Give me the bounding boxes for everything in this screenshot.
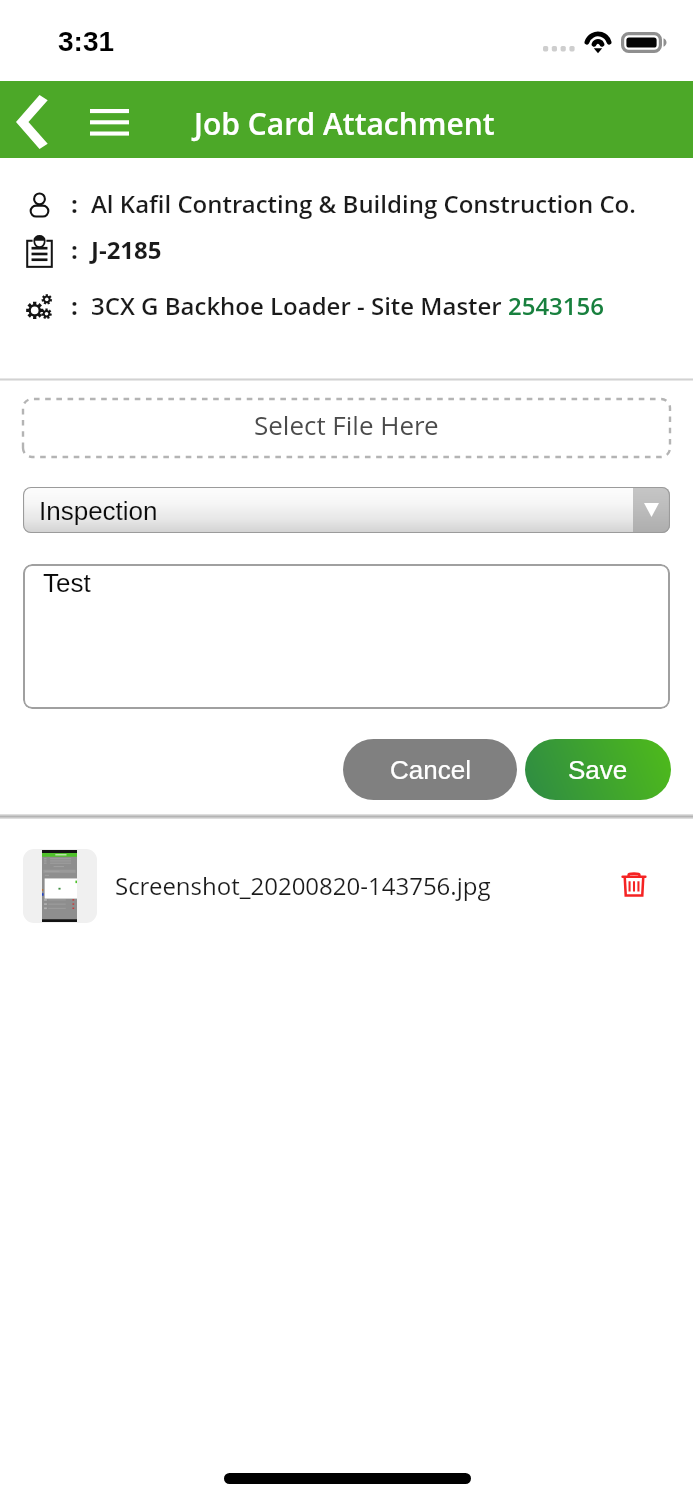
staticText: Al Kafil Contracting & Building Construc… [91, 187, 636, 220]
button[interactable]: Select File Here [23, 399, 670, 457]
staticText: 2543156 [508, 289, 604, 322]
button[interactable]: Cancel [343, 739, 517, 800]
staticText: Test [43, 568, 91, 597]
staticText: Screenshot_20200820-143756.jpg [115, 869, 491, 902]
button[interactable]: Delete [608, 857, 658, 907]
button[interactable]: Test [23, 564, 670, 709]
staticText: : [71, 289, 78, 322]
button[interactable]: Back [0, 81, 76, 158]
staticText: 3CX G Backhoe Loader - Site Master [91, 289, 508, 322]
staticText: Job Card Attachment [194, 103, 495, 144]
button[interactable]: Screenshot_20200820-143756.jpg [0, 840, 693, 935]
button[interactable]: Save [525, 739, 671, 800]
staticText: : [71, 233, 78, 266]
staticText: Save [568, 755, 628, 784]
staticText: J-2185 [91, 233, 162, 266]
staticText: 3:31 [58, 26, 115, 57]
staticText: Inspection [39, 496, 158, 525]
staticText: Select File Here [254, 407, 439, 442]
button[interactable]: Inspection [23, 487, 670, 533]
staticText: : [71, 187, 78, 220]
staticText: Cancel [390, 755, 471, 784]
button[interactable]: Menu [76, 81, 152, 158]
